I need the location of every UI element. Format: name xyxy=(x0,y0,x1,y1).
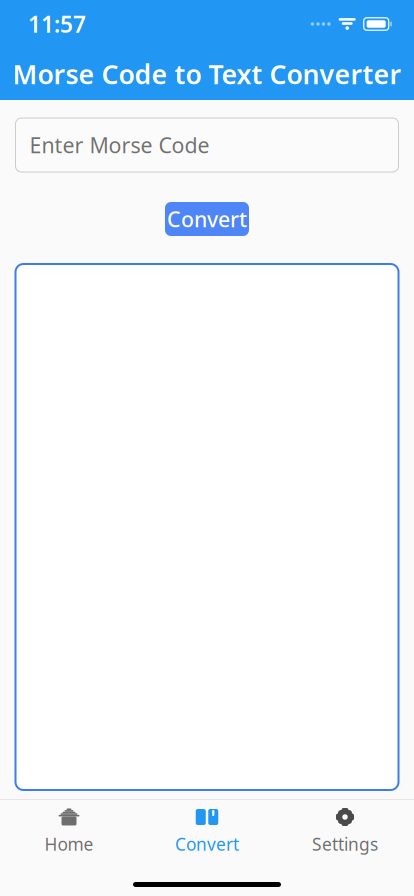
button[interactable]: Settings xyxy=(276,800,414,862)
staticText: Home xyxy=(44,832,93,855)
button[interactable]: Convert xyxy=(165,202,249,236)
staticText: Enter Morse Code xyxy=(29,131,209,159)
staticText: Convert xyxy=(167,205,247,233)
staticText: Morse Code to Text Converter xyxy=(12,56,401,92)
button[interactable]: Convert xyxy=(138,800,276,862)
button[interactable]: Enter Morse Code xyxy=(15,118,398,172)
staticText: Convert xyxy=(175,832,239,855)
staticText: 11:57 xyxy=(28,9,86,39)
staticText: Settings xyxy=(312,832,378,855)
button[interactable]: Home xyxy=(0,800,138,862)
